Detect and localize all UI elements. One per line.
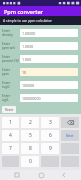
staticText: 100000 <box>22 83 35 88</box>
staticText: 7 <box>9 145 12 152</box>
button[interactable]: Next <box>61 130 79 141</box>
staticText: Next <box>66 133 74 138</box>
button[interactable]: 1 <box>2 117 19 128</box>
button[interactable]: 9 <box>41 143 59 154</box>
staticText: 9 <box>49 145 52 152</box>
button[interactable]: Back <box>58 170 70 180</box>
button[interactable]: 1.00000 <box>20 29 78 37</box>
staticText: 2 <box>29 119 32 126</box>
staticText: 1.0000 <box>22 44 34 49</box>
staticText: 6 <box>49 132 52 139</box>
button[interactable]: 7 <box>2 143 19 154</box>
staticText: 1 <box>9 119 12 126</box>
staticText: 1.000 <box>22 57 32 62</box>
button[interactable]: 8 <box>21 143 39 154</box>
button[interactable]: Enter <box>0 26 81 39</box>
button[interactable]: Enter <box>0 78 81 91</box>
button[interactable]: 6 <box>41 130 59 141</box>
staticText: Enter <box>2 81 11 85</box>
staticText: 100000000 <box>22 96 41 101</box>
staticText: ppm w/v <box>2 46 16 50</box>
button[interactable]: 1.000 <box>20 55 78 63</box>
staticText: Enter <box>2 68 11 72</box>
staticText: Enter <box>2 55 11 59</box>
staticText: 10 <box>22 70 27 75</box>
staticText: Enter <box>2 42 11 46</box>
staticText: ppm <box>2 72 9 76</box>
staticText: Enter <box>2 29 11 33</box>
staticText: 4 <box>9 132 12 139</box>
button[interactable]: 100000000 <box>20 94 78 102</box>
staticText: 3 <box>49 119 52 126</box>
staticText: percent (%) <box>2 59 19 63</box>
staticText: 1.00000 <box>22 31 36 36</box>
button[interactable]: Recent apps <box>11 170 23 180</box>
staticText: Reset <box>5 108 14 112</box>
button[interactable]: Ppm converter <box>0 6 81 16</box>
button[interactable]: 10 <box>20 68 78 76</box>
staticText: Ppm converter <box>4 8 43 15</box>
button[interactable]: 1.0000 <box>20 42 78 50</box>
button[interactable]: Enter <box>0 52 81 65</box>
button[interactable]: Enter <box>0 65 81 78</box>
button[interactable]: Home <box>35 170 47 180</box>
button[interactable]: 0 <box>21 156 39 167</box>
button[interactable]: Enter <box>0 91 81 104</box>
staticText: density <box>2 33 13 37</box>
button[interactable]: Enter <box>0 39 81 52</box>
button[interactable]: 4 <box>2 130 19 141</box>
staticText: 5 <box>29 132 32 139</box>
button[interactable]: Reset <box>2 106 16 113</box>
staticText: ug/L <box>2 98 9 102</box>
button[interactable]: 2 <box>21 117 39 128</box>
staticText: 8 <box>29 145 32 152</box>
button[interactable]: 100000 <box>20 81 78 89</box>
staticText: 0 <box>29 158 32 165</box>
button[interactable]: 3 <box>41 117 59 128</box>
button[interactable]: 5 <box>21 130 39 141</box>
staticText: Enter <box>2 94 11 98</box>
staticText: A simple to use ppm calculator <box>3 18 52 23</box>
staticText: mg/L <box>2 85 10 89</box>
button[interactable]: Backspace <box>61 117 79 128</box>
